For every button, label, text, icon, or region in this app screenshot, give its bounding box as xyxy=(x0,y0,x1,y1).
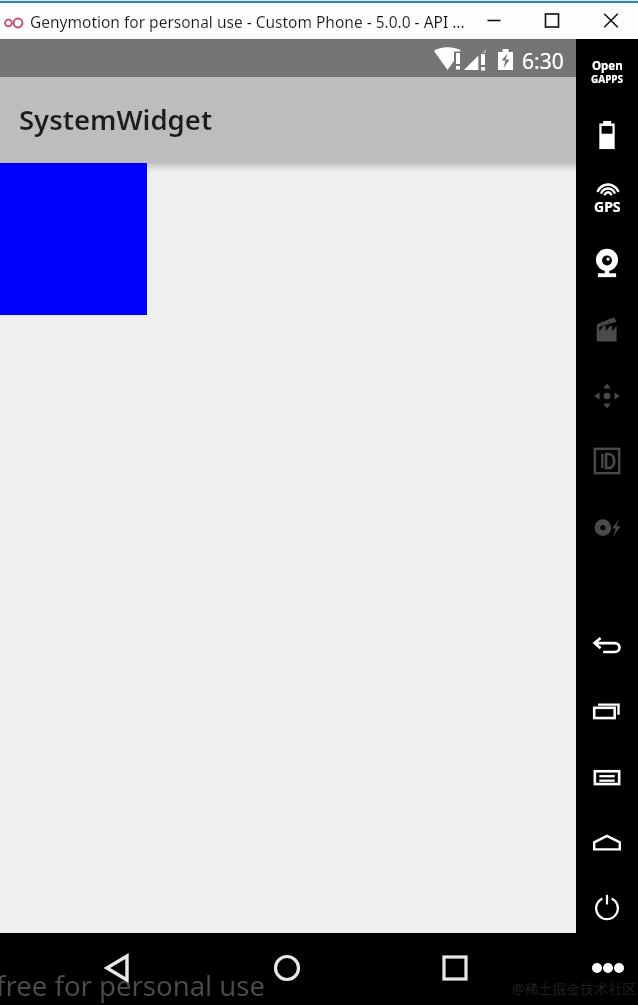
button[interactable]: Back xyxy=(88,938,148,998)
button[interactable]: Battery xyxy=(576,109,638,161)
button[interactable]: Camera xyxy=(576,238,638,290)
button[interactable]: More options xyxy=(583,943,633,993)
staticText: SystemWidget xyxy=(19,101,213,138)
button[interactable]: Recents xyxy=(576,685,638,737)
button[interactable]: Home xyxy=(576,817,638,869)
staticText: GPS xyxy=(594,197,621,216)
staticText: Genymotion for personal use - Custom Pho… xyxy=(30,11,465,32)
button[interactable]: Home xyxy=(257,938,317,998)
button[interactable]: Minimize xyxy=(465,4,523,39)
button[interactable]: Maximize xyxy=(523,4,581,39)
button[interactable]: Disk IO xyxy=(576,501,638,553)
button[interactable]: Close xyxy=(582,4,638,39)
button[interactable]: Recents xyxy=(425,938,485,998)
button[interactable]: Menu xyxy=(576,751,638,803)
staticText: free for personal use xyxy=(0,967,265,1004)
button[interactable]: Power xyxy=(576,881,638,933)
button[interactable]: Back xyxy=(576,619,638,671)
button[interactable]: GPS xyxy=(576,173,638,225)
staticText: @稀土掘金技术社区 xyxy=(512,979,637,998)
button[interactable]: Dpad xyxy=(576,370,638,422)
staticText: GAPPS xyxy=(591,72,624,86)
button[interactable]: Open GAPPS xyxy=(576,49,638,97)
staticText: 6:30 xyxy=(522,47,564,76)
staticText: Open xyxy=(592,58,623,74)
button[interactable]: Screen record xyxy=(576,304,638,356)
button[interactable]: Identifiers xyxy=(576,435,638,487)
